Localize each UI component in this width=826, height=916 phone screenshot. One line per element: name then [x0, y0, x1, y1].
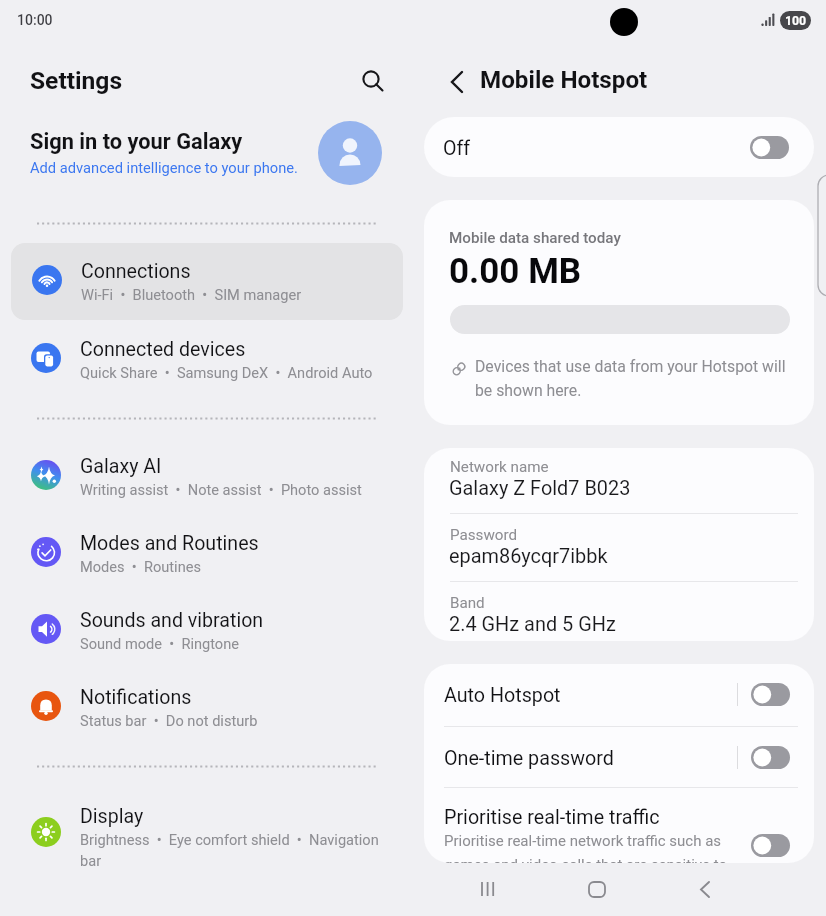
button[interactable]: Sign in to your Galaxy [0, 118, 413, 190]
staticText: Status bar • Do not disturb [80, 712, 420, 729]
staticText: epam86ycqr7ibbk [449, 545, 608, 568]
staticText: 10:00 [17, 12, 53, 28]
staticText: Writing assist • Note assist • Photo ass… [80, 481, 420, 498]
button[interactable]: Notifications [0, 673, 413, 743]
staticText: Add advanced intelligence to your phone. [30, 159, 298, 176]
button[interactable]: Profile [318, 121, 382, 185]
button[interactable]: Toggle [750, 136, 789, 159]
staticText: Display [80, 805, 144, 828]
button[interactable]: Toggle [751, 746, 790, 769]
staticText: Modes • Routines [80, 558, 420, 575]
button[interactable]: Sounds and vibration [0, 596, 413, 666]
button[interactable]: Connected devices [0, 325, 413, 395]
staticText: Network name [450, 458, 549, 476]
staticText: Mobile data shared today [449, 229, 621, 247]
staticText: Modes and Routines [80, 532, 259, 555]
staticText: Galaxy Z Fold7 B023 [449, 477, 631, 500]
staticText: Password [450, 526, 518, 544]
button[interactable]: Modes and Routines [0, 519, 413, 589]
button[interactable]: Back [688, 872, 722, 906]
staticText: Mobile Hotspot [480, 66, 648, 94]
staticText: 100 [785, 14, 807, 28]
staticText: Prioritise real-time traffic [444, 806, 660, 829]
staticText: Band [450, 594, 485, 612]
staticText: Connections [81, 260, 191, 283]
staticText: 0.00 MB [449, 251, 582, 292]
button[interactable]: Galaxy AI [0, 442, 413, 512]
button[interactable]: Prioritise real-time traffic [424, 788, 814, 850]
staticText: Notifications [80, 686, 192, 709]
staticText: Off [443, 137, 471, 160]
staticText: Wi-Fi • Bluetooth • SIM manager [81, 286, 403, 303]
staticText: Prioritise real-time network traffic suc… [444, 832, 736, 863]
staticText: One-time password [444, 747, 614, 770]
button[interactable]: Toggle [751, 834, 790, 857]
button[interactable]: Toggle [751, 683, 790, 706]
button[interactable]: Password [424, 516, 814, 584]
button[interactable]: Off [424, 117, 814, 177]
button[interactable]: Home [580, 872, 614, 906]
button[interactable]: Auto Hotspot [424, 664, 814, 726]
staticText: Galaxy AI [80, 455, 162, 478]
staticText: Sound mode • Ringtone [80, 635, 420, 652]
staticText: Sounds and vibration [80, 609, 264, 632]
button[interactable]: Network name [424, 448, 814, 516]
staticText: Settings [30, 66, 123, 95]
button[interactable]: Connections [11, 243, 403, 320]
staticText: Auto Hotspot [444, 684, 561, 707]
staticText: Sign in to your Galaxy [30, 129, 243, 155]
button[interactable]: Display [0, 790, 413, 880]
staticText: Brightness • Eye comfort shield • Naviga… [80, 831, 395, 869]
button[interactable]: Band [424, 584, 814, 641]
staticText: 2.4 GHz and 5 GHz [449, 613, 616, 636]
button[interactable]: One-time password [424, 727, 814, 789]
staticText: Quick Share • Samsung DeX • Android Auto [80, 364, 420, 381]
button[interactable]: Back [439, 62, 479, 102]
button[interactable]: Recent apps [471, 872, 505, 906]
staticText: Devices that use data from your Hotspot … [475, 357, 795, 400]
staticText: Connected devices [80, 338, 246, 361]
button[interactable]: Search [353, 61, 389, 97]
